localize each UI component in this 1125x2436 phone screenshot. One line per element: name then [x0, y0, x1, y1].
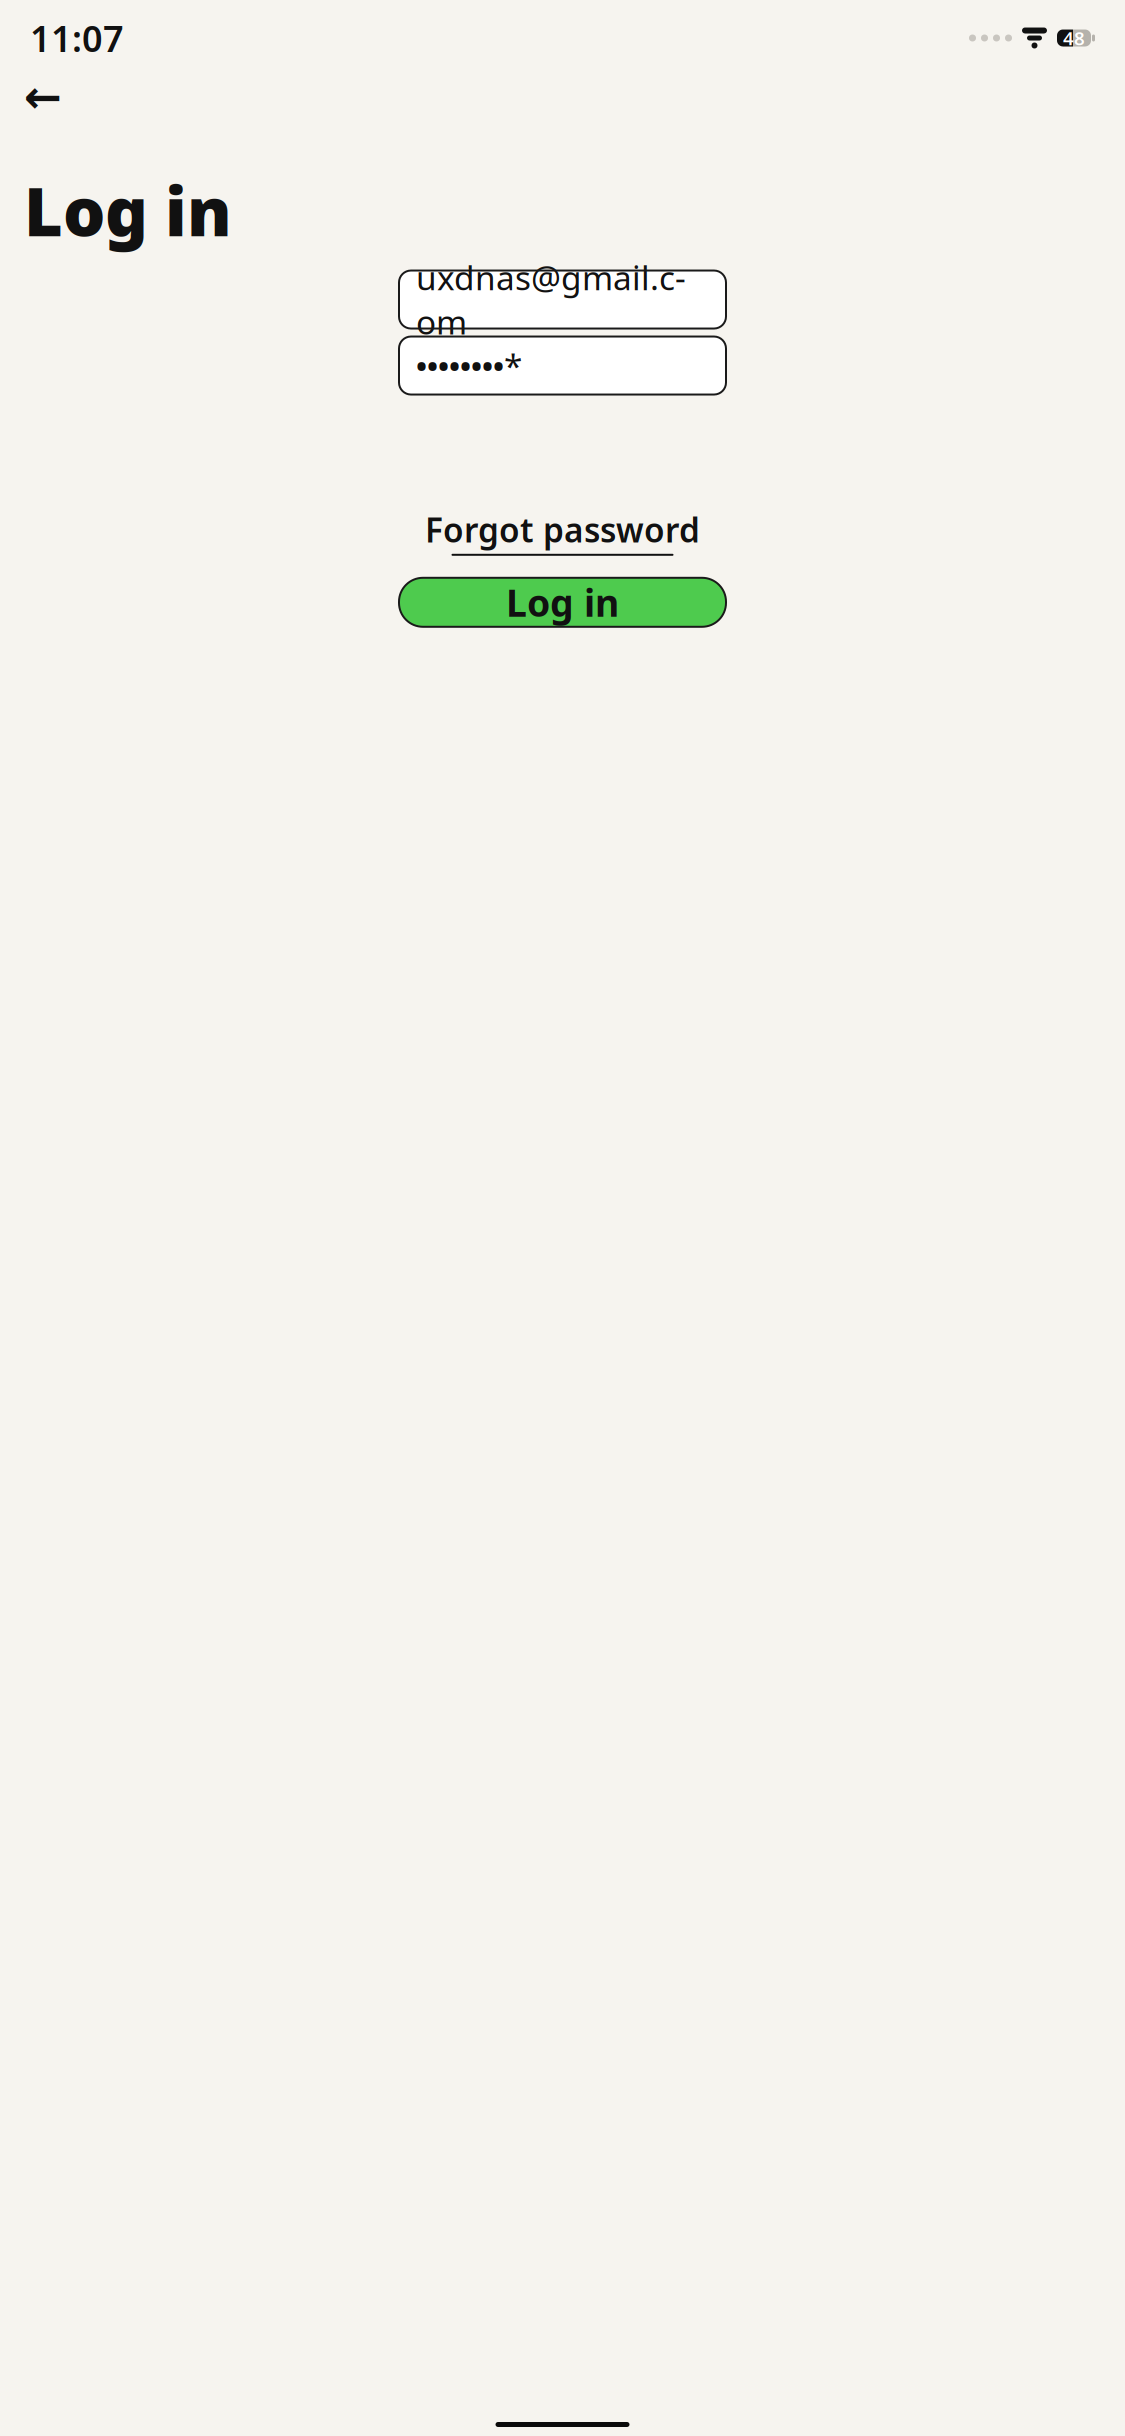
staticText: * — [504, 343, 522, 388]
staticText: •••••••• — [416, 346, 504, 385]
staticText: Log in — [24, 166, 232, 254]
staticText: Log in — [506, 577, 619, 627]
staticText: Forgot password — [425, 507, 700, 552]
button[interactable]: Forgot password — [417, 502, 708, 561]
button[interactable]: Back — [20, 74, 66, 120]
staticText: 11:07 — [30, 14, 124, 62]
button[interactable]: Log in — [399, 578, 726, 627]
button[interactable]: •••••••• — [399, 336, 726, 394]
staticText: 48 — [1063, 26, 1085, 50]
staticText: uxdnas@gmail.com — [416, 255, 686, 344]
button[interactable]: uxdnas@gmail.com — [399, 270, 726, 328]
staticText: ← — [24, 71, 62, 123]
